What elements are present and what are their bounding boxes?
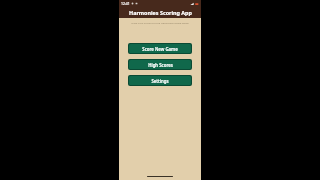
- staticText: 12:41: [121, 1, 130, 6]
- staticText: Harmonies Scoring App: [129, 9, 192, 16]
- staticText: Track your scores for the Harmonies boar…: [131, 21, 189, 24]
- staticText: Score New Game: [142, 46, 178, 52]
- staticText: High Scores: [148, 62, 173, 68]
- button[interactable]: Score New Game: [129, 44, 191, 53]
- button[interactable]: Settings: [129, 76, 191, 85]
- button[interactable]: High Scores: [129, 60, 191, 69]
- other: Home gesture bar: [147, 176, 173, 177]
- staticText: Settings: [151, 78, 169, 84]
